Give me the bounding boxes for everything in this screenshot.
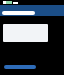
- button[interactable]: [2, 11, 35, 15]
- button[interactable]: [4, 65, 36, 69]
- button[interactable]: [3, 24, 48, 42]
